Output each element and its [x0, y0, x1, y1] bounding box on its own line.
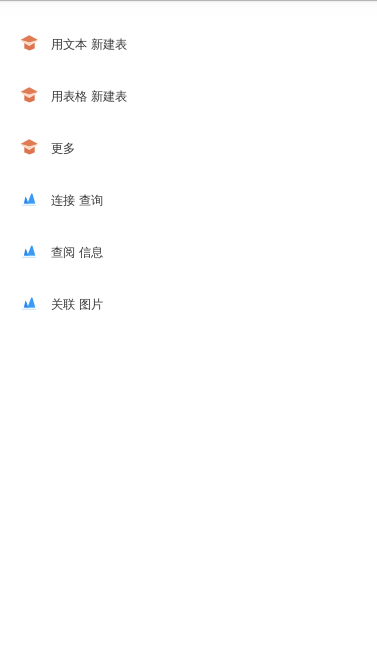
- staticText: 用表格 新建表: [51, 89, 127, 104]
- staticText: 更多: [51, 141, 75, 156]
- button[interactable]: 用表格 新建表: [0, 69, 377, 121]
- button[interactable]: 更多: [0, 121, 377, 173]
- staticText: 连接 查询: [51, 193, 103, 208]
- button[interactable]: 查阅 信息: [0, 225, 377, 277]
- button[interactable]: 关联 图片: [0, 277, 377, 329]
- button[interactable]: 连接 查询: [0, 173, 377, 225]
- staticText: 用文本 新建表: [51, 37, 127, 52]
- button[interactable]: 用文本 新建表: [0, 17, 377, 69]
- staticText: 关联 图片: [51, 297, 103, 312]
- staticText: 查阅 信息: [51, 245, 103, 260]
